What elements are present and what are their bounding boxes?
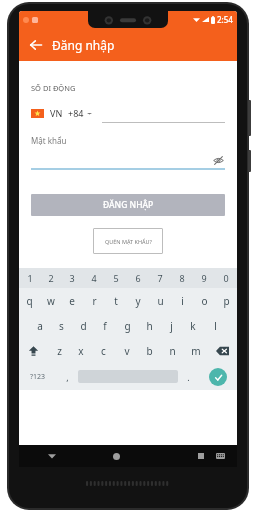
- staticText: w: [47, 294, 55, 308]
- staticText: r: [92, 294, 97, 308]
- staticText: h: [146, 319, 153, 333]
- button[interactable]: VN: [31, 107, 92, 119]
- button[interactable]: ?123: [19, 363, 57, 390]
- staticText: QUÊN MẬT KHẨU?: [105, 238, 152, 245]
- button[interactable]: j: [160, 313, 182, 338]
- staticText: 6: [135, 272, 141, 284]
- staticText: SỐ DI ĐỘNG: [31, 83, 76, 93]
- button[interactable]: .: [178, 363, 199, 390]
- staticText: 9: [201, 272, 207, 284]
- button[interactable]: Shift: [19, 338, 48, 363]
- staticText: 7: [157, 272, 163, 284]
- staticText: u: [157, 294, 164, 308]
- staticText: t: [114, 294, 118, 308]
- button[interactable]: t: [105, 288, 127, 313]
- staticText: 8: [179, 272, 185, 284]
- button[interactable]: [102, 103, 225, 123]
- button[interactable]: o: [193, 288, 215, 313]
- button[interactable]: 2: [40, 268, 61, 288]
- staticText: b: [146, 344, 153, 358]
- button[interactable]: u: [149, 288, 171, 313]
- button[interactable]: a: [29, 313, 50, 338]
- staticText: q: [26, 294, 33, 308]
- staticText: Đăng nhập: [52, 37, 115, 53]
- staticText: 5: [113, 272, 119, 284]
- staticText: d: [80, 319, 87, 333]
- staticText: 2:54: [217, 14, 233, 25]
- staticText: 0: [223, 272, 229, 284]
- button[interactable]: z: [48, 338, 70, 363]
- staticText: g: [124, 319, 131, 333]
- staticText: n: [169, 344, 176, 358]
- button[interactable]: v: [115, 338, 138, 363]
- button[interactable]: w: [40, 288, 61, 313]
- staticText: x: [78, 344, 84, 358]
- button[interactable]: n: [161, 338, 184, 363]
- staticText: z: [57, 344, 62, 358]
- button[interactable]: Enter: [199, 363, 237, 390]
- staticText: ĐĂNG NHẬP: [103, 199, 154, 211]
- button[interactable]: 0: [215, 268, 237, 288]
- staticText: c: [101, 344, 106, 358]
- button[interactable]: 7: [149, 268, 171, 288]
- button[interactable]: Back: [19, 445, 84, 467]
- button[interactable]: e: [61, 288, 83, 313]
- staticText: VN: [50, 107, 63, 119]
- button[interactable]: m: [184, 338, 207, 363]
- button[interactable]: s: [50, 313, 72, 338]
- button[interactable]: p: [215, 288, 237, 313]
- staticText: s: [59, 319, 64, 333]
- staticText: k: [190, 319, 196, 333]
- staticText: e: [69, 294, 75, 308]
- button[interactable]: r: [83, 288, 105, 313]
- staticText: ?123: [30, 372, 46, 382]
- staticText: v: [124, 344, 130, 358]
- button[interactable]: 8: [171, 268, 193, 288]
- button[interactable]: Toggle password visibility: [211, 153, 225, 167]
- button[interactable]: k: [182, 313, 204, 338]
- button[interactable]: Back: [19, 28, 52, 61]
- staticText: y: [135, 294, 141, 308]
- button[interactable]: QUÊN MẬT KHẨU?: [93, 228, 163, 254]
- staticText: +84: [68, 107, 84, 119]
- button[interactable]: l: [204, 313, 226, 338]
- button[interactable]: Backspace: [207, 338, 237, 363]
- button[interactable]: x: [70, 338, 92, 363]
- staticText: 1: [27, 272, 33, 284]
- staticText: 4: [91, 272, 97, 284]
- staticText: a: [37, 319, 43, 333]
- button[interactable]: b: [138, 338, 161, 363]
- button[interactable]: 9: [193, 268, 215, 288]
- button[interactable]: d: [72, 313, 94, 338]
- staticText: .: [187, 371, 190, 383]
- button[interactable]: y: [127, 288, 149, 313]
- staticText: 3: [69, 272, 75, 284]
- button[interactable]: Home: [84, 445, 149, 467]
- staticText: j: [170, 319, 173, 333]
- staticText: o: [201, 294, 208, 308]
- button[interactable]: ĐĂNG NHẬP: [31, 194, 225, 216]
- button[interactable]: g: [116, 313, 138, 338]
- button[interactable]: 6: [127, 268, 149, 288]
- button[interactable]: 3: [61, 268, 83, 288]
- button[interactable]: h: [138, 313, 160, 338]
- button[interactable]: Switch keyboard: [204, 445, 237, 467]
- button[interactable]: 4: [83, 268, 105, 288]
- staticText: ,: [66, 371, 69, 383]
- button[interactable]: 1: [19, 268, 40, 288]
- button[interactable]: Recent apps: [149, 445, 204, 467]
- button[interactable]: i: [171, 288, 193, 313]
- staticText: 2: [48, 272, 54, 284]
- staticText: i: [181, 294, 184, 308]
- staticText: Mật khẩu: [31, 135, 67, 146]
- button[interactable]: 5: [105, 268, 127, 288]
- button[interactable]: q: [19, 288, 40, 313]
- staticText: l: [214, 319, 217, 333]
- button[interactable]: f: [94, 313, 116, 338]
- staticText: m: [191, 344, 201, 358]
- button[interactable]: c: [92, 338, 115, 363]
- staticText: p: [223, 294, 230, 308]
- button[interactable]: ,: [57, 363, 78, 390]
- button[interactable]: Toggle password visibility: [31, 152, 225, 168]
